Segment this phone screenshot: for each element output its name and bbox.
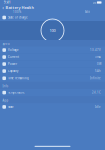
staticText: 100% <box>13 10 21 14</box>
staticText: Temperature <box>8 91 25 94</box>
button[interactable]: Voltage <box>0 47 105 54</box>
staticText: State of charge <box>8 16 28 19</box>
button[interactable]: Current <box>0 54 105 61</box>
staticText: Voltage <box>8 48 19 52</box>
staticText: Power <box>8 62 17 66</box>
button[interactable]: State of charge <box>0 14 105 21</box>
staticText: 100 <box>49 28 55 33</box>
staticText: Edit <box>85 10 90 14</box>
staticText: 5Ah <box>95 69 101 73</box>
button[interactable]: Power <box>0 61 105 68</box>
staticText: 0W <box>97 62 101 66</box>
staticText: 24.1C <box>92 91 101 94</box>
staticText: LTE <box>93 1 96 4</box>
staticText: Battery Health <box>6 5 35 10</box>
staticText: Idle <box>95 105 101 109</box>
staticText: 13.47V <box>90 48 101 52</box>
staticText: Current <box>8 55 19 59</box>
button[interactable]: Temperature <box>0 89 105 96</box>
staticText: Time remaining <box>8 76 29 80</box>
staticText: Infinite <box>90 76 101 80</box>
staticText: App <box>2 99 8 102</box>
button[interactable]: Back <box>2 5 5 10</box>
staticText: 3mA <box>95 55 101 59</box>
button[interactable]: Time remaining <box>0 75 105 82</box>
staticText: State <box>8 105 14 109</box>
button[interactable]: Capacity <box>0 68 105 75</box>
staticText: Info <box>2 84 8 88</box>
staticText: Specs <box>2 42 9 45</box>
staticText: 9:41 <box>4 1 11 4</box>
staticText: ‹ <box>2 4 4 11</box>
staticText: Capacity <box>8 69 18 73</box>
button[interactable]: State <box>0 103 105 110</box>
